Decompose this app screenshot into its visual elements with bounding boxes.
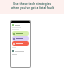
button[interactable] [12,31,29,36]
button[interactable] [12,36,29,41]
button[interactable] [12,41,29,46]
staticText: when you've got a fatal fault [11,6,54,10]
staticText: Use these tech strategies [13,2,51,6]
